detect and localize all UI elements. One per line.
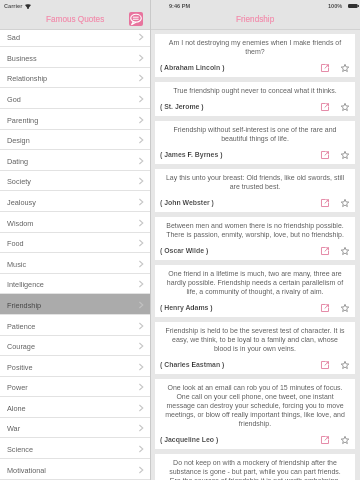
button[interactable]: Am I not destroying my enemies when I ma… xyxy=(155,34,355,77)
button[interactable]: Share xyxy=(319,64,330,72)
staticText: Lay this unto your breast: Old friends, … xyxy=(164,174,346,191)
staticText: Business xyxy=(7,54,37,62)
staticText: Friendship xyxy=(7,301,42,309)
button[interactable]: Motivational xyxy=(0,459,150,480)
button[interactable]: Share xyxy=(319,361,330,369)
staticText: ( Charles Eastman ) xyxy=(160,361,225,369)
button[interactable]: Between men and women there is no friend… xyxy=(155,217,355,260)
button[interactable]: Sad xyxy=(0,27,150,47)
button[interactable]: War xyxy=(0,418,150,438)
staticText: Science xyxy=(7,445,33,453)
button[interactable]: Share xyxy=(319,199,330,207)
staticText: Parenting xyxy=(7,116,39,124)
staticText: Dating xyxy=(7,157,29,165)
button[interactable]: Positive xyxy=(0,356,150,377)
button[interactable]: Favorite xyxy=(339,247,350,255)
staticText: ( Oscar Wilde ) xyxy=(160,247,209,255)
staticText: Friendship xyxy=(236,15,275,24)
button[interactable]: Courage xyxy=(0,336,150,356)
button[interactable]: Jealousy xyxy=(0,191,150,212)
button[interactable]: Share xyxy=(319,151,330,159)
staticText: Wisdom xyxy=(7,219,34,227)
staticText: Friendship is held to be the severest te… xyxy=(164,327,346,353)
button[interactable]: Favorite xyxy=(339,361,350,369)
button[interactable]: Favorite xyxy=(339,103,350,111)
staticText: Motivational xyxy=(7,466,46,474)
button[interactable]: Favorite xyxy=(339,199,350,207)
staticText: Jealousy xyxy=(7,198,36,206)
button[interactable]: Share xyxy=(319,304,330,312)
button[interactable]: Dating xyxy=(0,150,150,171)
staticText: Society xyxy=(7,177,31,185)
button[interactable]: One friend in a lifetime is much, two ar… xyxy=(155,265,355,317)
staticText: Positive xyxy=(7,363,33,371)
staticText: ( St. Jerome ) xyxy=(160,103,204,111)
button[interactable]: Design xyxy=(0,130,150,150)
staticText: Food xyxy=(7,239,24,247)
staticText: Do not keep on with a mockery of friends… xyxy=(164,459,346,480)
button[interactable]: Wisdom xyxy=(0,212,150,233)
button[interactable]: Intelligence xyxy=(0,274,150,294)
staticText: Alone xyxy=(7,404,26,412)
staticText: Carrier xyxy=(4,3,23,9)
button[interactable]: Share xyxy=(319,103,330,111)
button[interactable]: Science xyxy=(0,438,150,459)
staticText: God xyxy=(7,95,21,103)
staticText: ( Henry Adams ) xyxy=(160,304,213,312)
button[interactable]: Friendship without self-interest is one … xyxy=(155,121,355,164)
staticText: Patience xyxy=(7,322,36,330)
staticText: One look at an email can rob you of 15 m… xyxy=(164,384,346,428)
staticText: 9:46 PM xyxy=(169,3,191,9)
staticText: Power xyxy=(7,383,28,391)
staticText: 100% xyxy=(328,3,343,9)
staticText: Intelligence xyxy=(7,280,44,288)
button[interactable]: Food xyxy=(0,233,150,253)
staticText: Between men and women there is no friend… xyxy=(164,222,346,239)
button[interactable]: Favorite xyxy=(339,304,350,312)
button[interactable]: Favorite xyxy=(339,151,350,159)
button[interactable]: True friendship ought never to conceal w… xyxy=(155,82,355,116)
button[interactable]: Quote of the day xyxy=(129,12,143,26)
button[interactable]: Alone xyxy=(0,397,150,418)
staticText: One friend in a lifetime is much, two ar… xyxy=(164,270,346,296)
button[interactable]: Society xyxy=(0,171,150,191)
staticText: Courage xyxy=(7,342,35,350)
staticText: Famous Quotes xyxy=(46,15,105,24)
button[interactable]: Share xyxy=(319,436,330,444)
staticText: ( Jacqueline Leo ) xyxy=(160,436,219,444)
button[interactable]: Favorite xyxy=(339,436,350,444)
button[interactable]: Music xyxy=(0,253,150,274)
staticText: Music xyxy=(7,260,27,268)
button[interactable]: Share xyxy=(319,247,330,255)
button[interactable]: Parenting xyxy=(0,109,150,130)
button[interactable]: One look at an email can rob you of 15 m… xyxy=(155,379,355,449)
button[interactable]: Friendship xyxy=(0,294,150,315)
staticText: ( Abraham Lincoln ) xyxy=(160,64,225,72)
button[interactable]: Power xyxy=(0,377,150,397)
staticText: ( James F. Byrnes ) xyxy=(160,151,223,159)
button[interactable]: Lay this unto your breast: Old friends, … xyxy=(155,169,355,212)
staticText: Design xyxy=(7,136,30,144)
button[interactable]: Do not keep on with a mockery of friends… xyxy=(155,454,355,480)
staticText: Relationship xyxy=(7,74,48,82)
staticText: Friendship without self-interest is one … xyxy=(164,126,346,143)
button[interactable]: Friendship is held to be the severest te… xyxy=(155,322,355,374)
staticText: Sad xyxy=(7,33,20,41)
staticText: ( John Webster ) xyxy=(160,199,214,207)
staticText: Am I not destroying my enemies when I ma… xyxy=(164,39,346,56)
button[interactable]: Relationship xyxy=(0,68,150,88)
staticText: War xyxy=(7,424,21,432)
button[interactable]: Business xyxy=(0,47,150,68)
button[interactable]: God xyxy=(0,88,150,109)
staticText: True friendship ought never to conceal w… xyxy=(164,87,346,95)
button[interactable]: Favorite xyxy=(339,64,350,72)
button[interactable]: Patience xyxy=(0,315,150,336)
